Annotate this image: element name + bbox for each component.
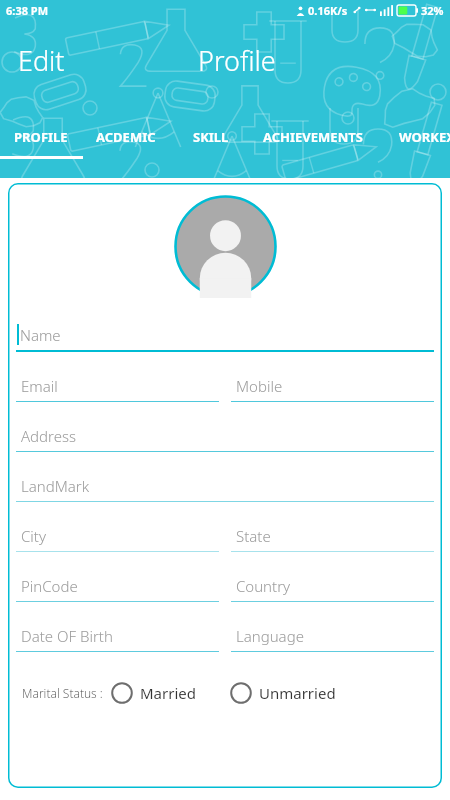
staticText: SKILL — [193, 128, 229, 146]
button[interactable]: Unmarried — [230, 678, 336, 708]
staticText: Address — [21, 426, 77, 446]
staticText: 6:38 PM — [6, 3, 49, 18]
button[interactable]: Edit — [14, 38, 69, 83]
staticText: Unmarried — [259, 683, 336, 703]
staticText: Mobile — [236, 376, 283, 396]
button[interactable]: Date OF Birth — [16, 626, 219, 652]
button[interactable]: City — [16, 526, 219, 552]
staticText: Country — [236, 576, 291, 596]
staticText: Email — [21, 376, 58, 396]
staticText: Date OF Birth — [21, 626, 113, 646]
staticText: ACHIEVEMENTS — [263, 128, 363, 146]
staticText: PinCode — [21, 576, 78, 596]
staticText: Marital Status : — [22, 685, 103, 701]
staticText: PROFILE — [14, 128, 68, 146]
button[interactable]: Country — [231, 576, 434, 602]
button[interactable]: ACHIEVEMENTS — [263, 122, 363, 152]
button[interactable]: LandMark — [16, 476, 434, 502]
button[interactable]: PinCode — [16, 576, 219, 602]
button[interactable]: Address — [16, 426, 434, 452]
staticText: Married — [140, 683, 196, 703]
button[interactable]: Mobile — [231, 376, 434, 402]
staticText: 32% — [421, 3, 444, 18]
staticText: ACDEMIC — [96, 128, 156, 146]
staticText: LandMark — [21, 476, 90, 496]
button[interactable]: Name — [16, 324, 434, 352]
staticText: Language — [236, 626, 304, 646]
button[interactable]: Profile photo — [174, 195, 277, 298]
button[interactable]: State — [231, 526, 434, 552]
button[interactable]: Email — [16, 376, 219, 402]
staticText: 0.16K/s — [308, 3, 348, 18]
staticText: Name — [20, 325, 61, 345]
button[interactable]: PROFILE — [14, 122, 68, 152]
staticText: State — [236, 526, 271, 546]
staticText: City — [21, 526, 46, 546]
button[interactable]: WORKEXP — [399, 122, 450, 152]
button[interactable]: Language — [231, 626, 434, 652]
staticText: Edit — [18, 42, 65, 79]
staticText: Profile — [198, 42, 276, 79]
button[interactable]: Married — [111, 678, 196, 708]
staticText: WORKEXP — [399, 128, 450, 146]
button[interactable]: ACDEMIC — [96, 122, 156, 152]
button[interactable]: SKILL — [193, 122, 229, 152]
